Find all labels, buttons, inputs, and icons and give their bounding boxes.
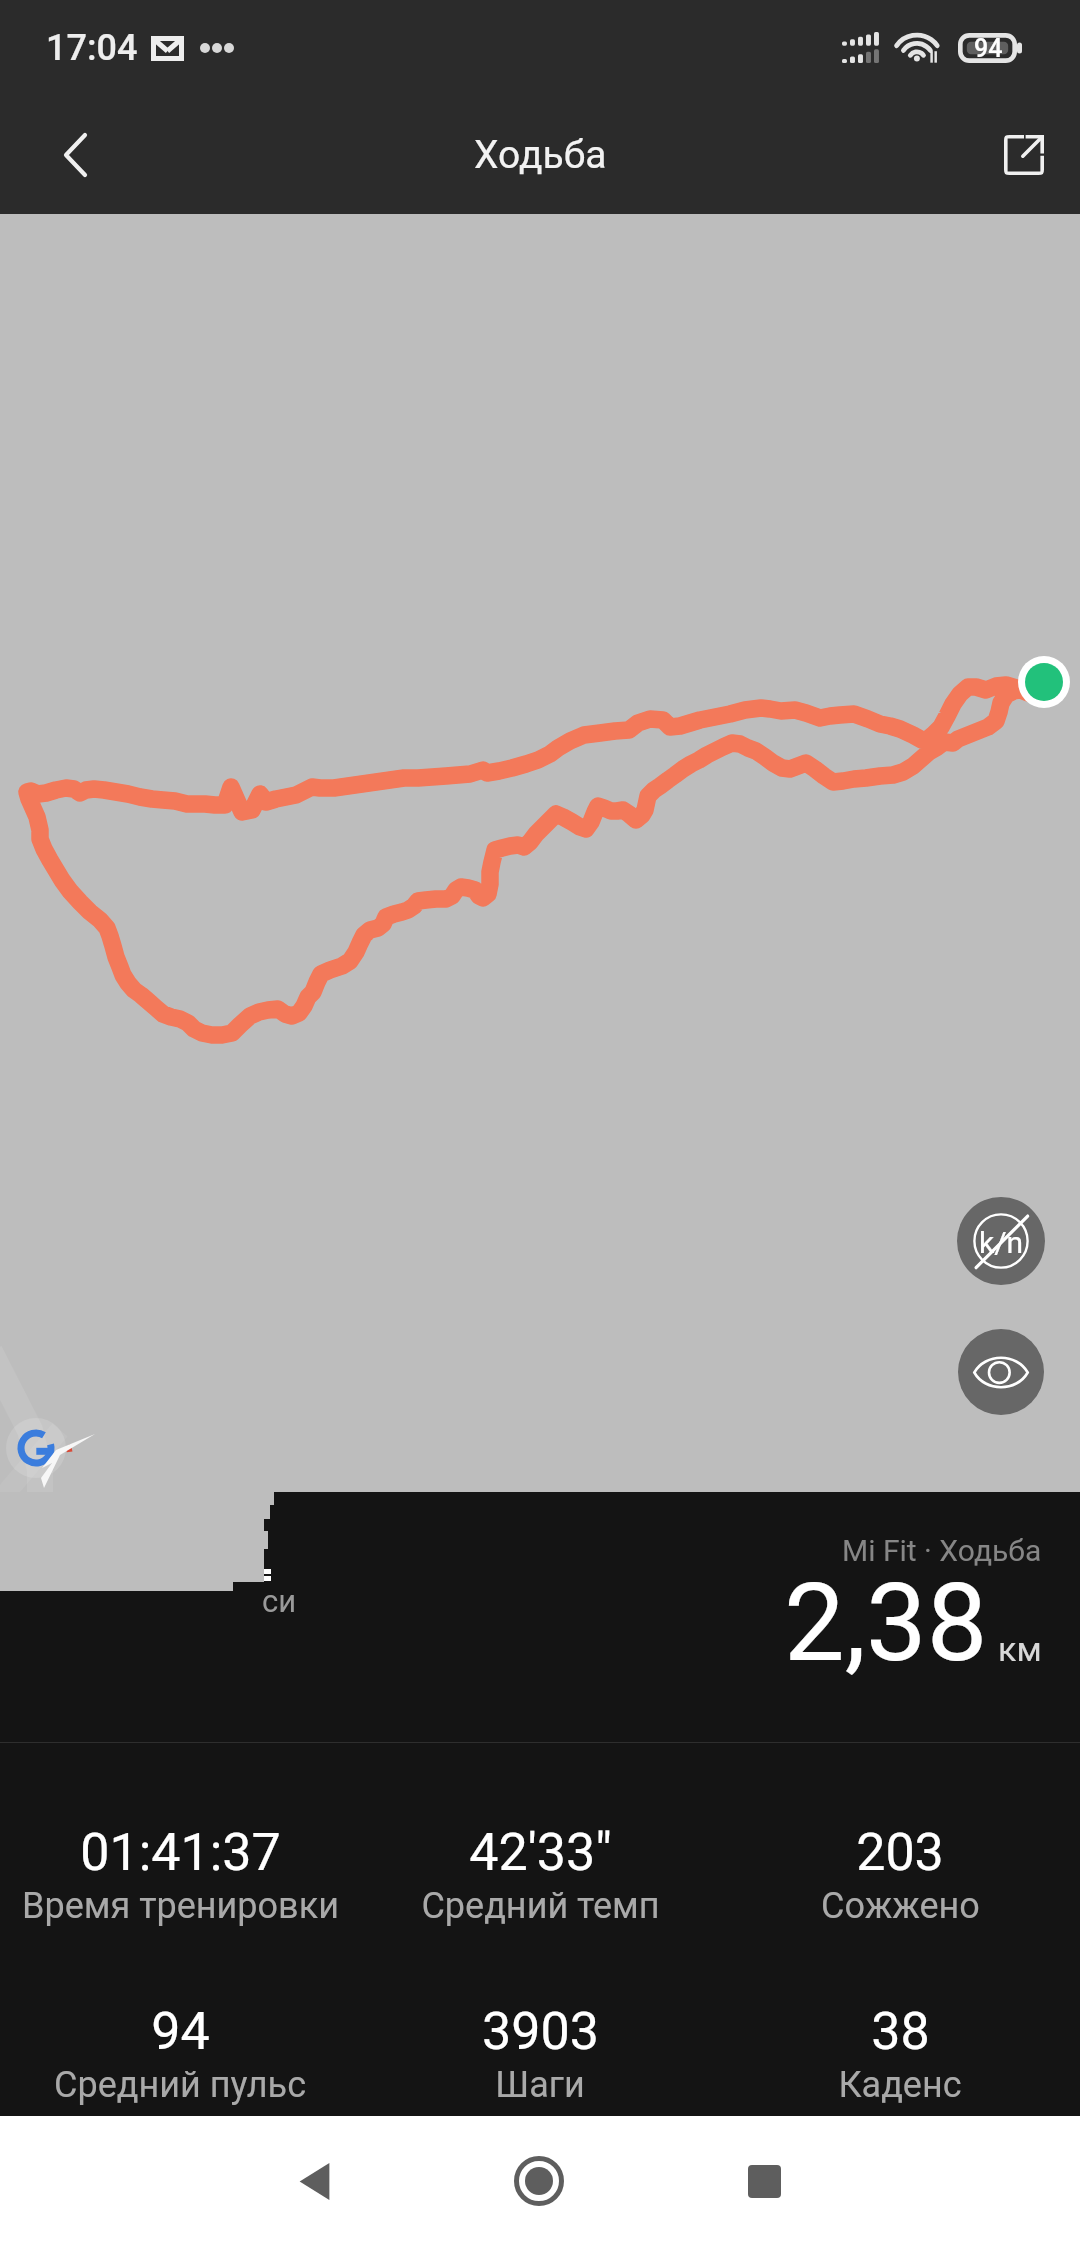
staticText: Время тренировки (22, 1885, 339, 1927)
button[interactable]: Share (940, 105, 1080, 214)
button[interactable]: 94 (0, 2001, 360, 2106)
button[interactable]: Back (259, 2126, 369, 2236)
button[interactable]: 42'33" (360, 1822, 720, 1927)
staticText: 38 (871, 2001, 930, 2062)
button[interactable]: Show route (958, 1329, 1044, 1415)
staticText: Ходьба (474, 132, 607, 178)
button[interactable]: Home (484, 2126, 594, 2236)
staticText: 203 (856, 1822, 944, 1883)
staticText: си (262, 1583, 297, 1619)
staticText: Mi Fit · Ходьба (842, 1533, 1042, 1568)
staticText: 17:04 (46, 27, 138, 69)
button[interactable]: Recent apps (709, 2126, 819, 2236)
button[interactable]: 01:41:37 (0, 1822, 360, 1927)
staticText: k/n (979, 1225, 1024, 1260)
staticText: Сожжено (821, 1885, 980, 1927)
staticText: Средний темп (421, 1885, 660, 1927)
button[interactable]: Back (0, 105, 150, 214)
button[interactable]: 3903 (360, 2001, 720, 2106)
staticText: км (998, 1629, 1042, 1669)
staticText: 3903 (482, 2001, 599, 2062)
staticText: Шаги (495, 2064, 585, 2106)
button[interactable]: 38 (720, 2001, 1080, 2106)
staticText: 94 (151, 2001, 210, 2062)
staticText: Каденс (838, 2064, 962, 2106)
button[interactable]: 203 (720, 1822, 1080, 1927)
button[interactable]: Hide kilometre markers (957, 1197, 1045, 1285)
staticText: 94 (974, 34, 1003, 63)
staticText: 2,38 (784, 1560, 988, 1687)
staticText: 01:41:37 (80, 1822, 281, 1883)
staticText: Средний пульс (54, 2064, 306, 2106)
staticText: 42'33" (469, 1822, 612, 1883)
